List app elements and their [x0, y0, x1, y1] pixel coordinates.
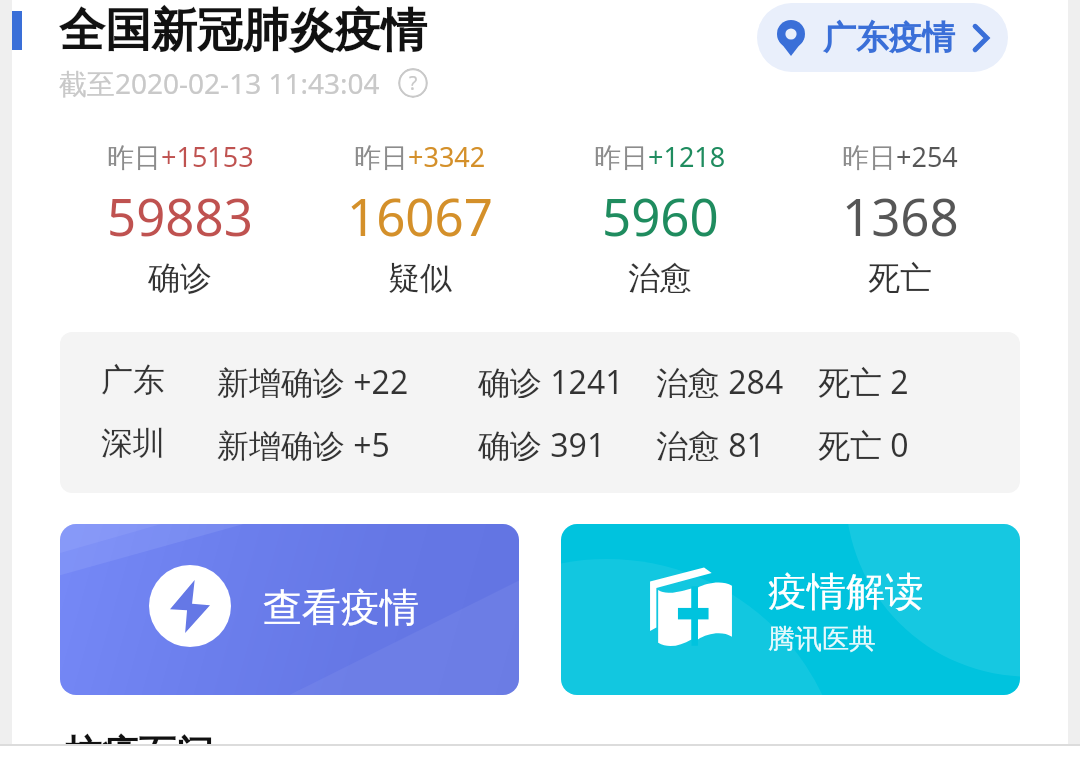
staticText: ? — [409, 70, 418, 96]
staticText: 16067 — [347, 181, 493, 250]
staticText: 5960 — [602, 181, 719, 250]
staticText: 59883 — [107, 181, 253, 250]
button[interactable]: 广东疫情 — [757, 3, 1008, 72]
button[interactable]: 数据说明 — [398, 68, 428, 98]
staticText: 确诊 1241 — [478, 360, 624, 398]
staticText: 新增确诊 +5 — [217, 423, 390, 461]
staticText: 广东疫情 — [823, 17, 955, 59]
staticText: 昨日+15153 — [107, 138, 254, 175]
button[interactable]: 昨日+1218 — [540, 138, 780, 298]
staticText: 疫情解读 — [768, 567, 924, 616]
button[interactable]: 昨日+15153 — [60, 138, 300, 298]
staticText: 深圳 — [101, 423, 165, 461]
staticText: 治愈 81 — [656, 423, 765, 461]
button[interactable]: 昨日+254 — [780, 138, 1020, 298]
button[interactable]: 昨日+3342 — [300, 138, 540, 298]
button[interactable]: 查看疫情 — [60, 524, 519, 695]
staticText: 确诊 391 — [478, 423, 606, 461]
staticText: 1368 — [842, 181, 959, 250]
staticText: 新增确诊 +22 — [217, 360, 409, 398]
staticText: 治愈 — [628, 258, 692, 298]
staticText: 截至2020-02-13 11:43:04 — [59, 64, 380, 102]
button[interactable]: 疫情解读 — [561, 524, 1020, 695]
staticText: 全国新冠肺炎疫情 — [59, 2, 427, 60]
button[interactable]: 广东 — [60, 332, 1020, 493]
staticText: 治愈 284 — [656, 360, 784, 398]
staticText: 确诊 — [148, 258, 212, 298]
staticText: 昨日+254 — [842, 138, 958, 175]
staticText: 昨日+3342 — [354, 138, 486, 175]
staticText: 查看疫情 — [263, 583, 419, 632]
staticText: 广东 — [101, 360, 165, 398]
staticText: 抗疫百问 — [65, 730, 213, 762]
staticText: 死亡 0 — [818, 423, 909, 461]
staticText: 死亡 — [868, 258, 932, 298]
staticText: 死亡 2 — [818, 360, 909, 398]
staticText: 昨日+1218 — [594, 138, 726, 175]
staticText: 腾讯医典 — [768, 622, 876, 656]
staticText: 疑似 — [388, 258, 452, 298]
